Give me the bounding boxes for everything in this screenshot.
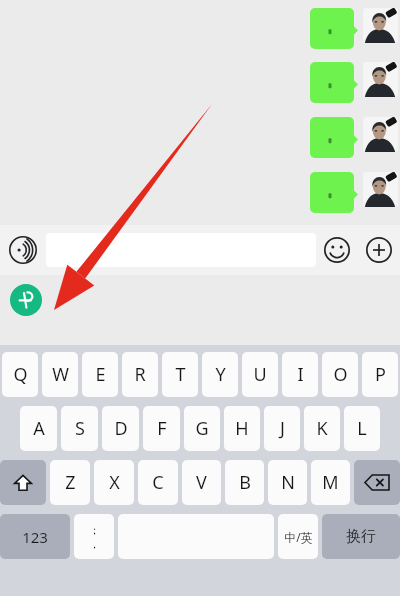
staticText: ； <box>89 523 100 537</box>
staticText: O <box>333 362 348 387</box>
staticText: H <box>235 416 249 441</box>
staticText: P <box>375 362 386 387</box>
button[interactable]: R <box>122 352 158 397</box>
button[interactable]: L <box>344 406 380 451</box>
button[interactable]: H <box>224 406 260 451</box>
button[interactable]: Contact avatar <box>363 8 398 43</box>
button[interactable]: Contact avatar <box>363 172 398 207</box>
staticText: B <box>239 470 251 495</box>
button[interactable]: Shift <box>0 460 46 505</box>
button[interactable]: T <box>162 352 198 397</box>
button[interactable]: I <box>282 352 318 397</box>
staticText: K <box>316 416 328 441</box>
button[interactable]: K <box>304 406 340 451</box>
staticText: V <box>196 470 207 495</box>
button[interactable]: Voice input <box>0 227 46 273</box>
button[interactable]: Y <box>202 352 238 397</box>
button[interactable]: W <box>42 352 78 397</box>
staticText: E <box>95 362 106 387</box>
button[interactable]: Contact avatar <box>363 117 398 152</box>
staticText: G <box>195 416 209 441</box>
button[interactable]: 换行 <box>322 514 400 559</box>
button[interactable]: Z <box>50 460 90 505</box>
staticText: I <box>297 362 304 387</box>
staticText: A <box>33 416 45 441</box>
staticText: J <box>280 416 285 441</box>
button[interactable]: U <box>242 352 278 397</box>
button[interactable]: X <box>94 460 134 505</box>
staticText: F <box>157 416 167 441</box>
staticText: M <box>322 470 339 495</box>
staticText: T <box>175 362 186 387</box>
staticText: 123 <box>22 527 48 547</box>
staticText: Z <box>65 470 76 495</box>
button[interactable] <box>46 233 316 267</box>
button[interactable]: WeChat pay shortcut <box>10 284 42 316</box>
button[interactable]: Message <box>310 172 360 213</box>
button[interactable]: S <box>61 406 98 451</box>
button[interactable]: G <box>184 406 220 451</box>
staticText: U <box>253 362 267 387</box>
staticText: ， <box>89 537 100 551</box>
button[interactable]: More options <box>358 229 400 271</box>
staticText: S <box>75 416 85 441</box>
button[interactable]: ； <box>74 514 114 559</box>
button[interactable]: O <box>322 352 358 397</box>
button[interactable]: Q <box>2 352 38 397</box>
staticText: Q <box>13 362 28 387</box>
staticText: 换行 <box>346 527 376 546</box>
staticText: R <box>134 362 146 387</box>
staticText: W <box>52 362 69 387</box>
button[interactable]: M <box>311 460 350 505</box>
button[interactable]: Message <box>310 117 360 158</box>
button[interactable]: D <box>102 406 139 451</box>
button[interactable]: J <box>264 406 300 451</box>
button[interactable]: 123 <box>0 514 70 559</box>
button[interactable]: P <box>362 352 398 397</box>
staticText: N <box>281 470 295 495</box>
button[interactable]: Message <box>310 8 360 49</box>
staticText: Y <box>215 362 226 387</box>
staticText: X <box>109 470 120 495</box>
staticText: C <box>152 470 164 495</box>
staticText: L <box>357 416 367 441</box>
button[interactable]: Contact avatar <box>363 62 398 97</box>
staticText: 中/英 <box>284 529 313 545</box>
button[interactable]: Message <box>310 62 360 103</box>
button[interactable]: 中/英 <box>278 514 318 559</box>
staticText: D <box>114 416 128 441</box>
button[interactable]: Emoji <box>316 229 358 271</box>
button[interactable]: Backspace <box>354 460 400 505</box>
button[interactable]: F <box>143 406 180 451</box>
button[interactable]: C <box>138 460 178 505</box>
button[interactable]: V <box>182 460 221 505</box>
button[interactable]: E <box>82 352 118 397</box>
button[interactable]: B <box>225 460 264 505</box>
button[interactable]: A <box>20 406 57 451</box>
button[interactable]: N <box>268 460 307 505</box>
